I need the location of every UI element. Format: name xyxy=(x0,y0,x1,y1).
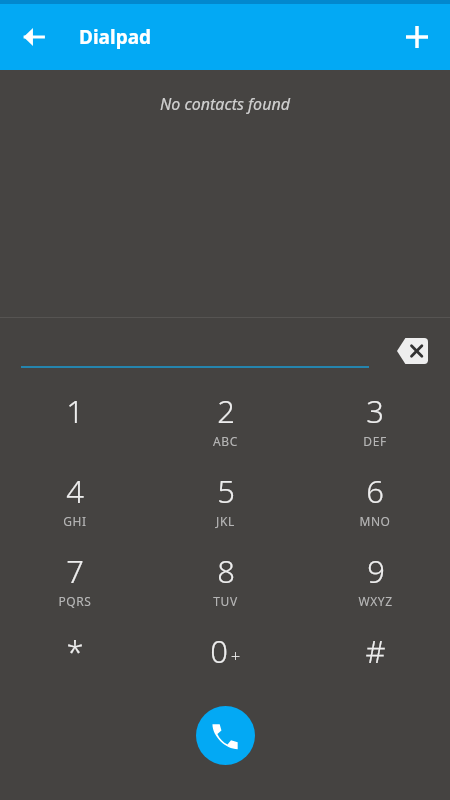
button[interactable]: 4 xyxy=(0,464,150,544)
staticText: GHI xyxy=(63,513,87,529)
staticText: 1 xyxy=(66,390,84,432)
button[interactable]: Backspace xyxy=(390,329,434,373)
staticText: ABC xyxy=(213,433,238,449)
button[interactable]: 8 xyxy=(150,544,300,624)
button[interactable]: Call xyxy=(196,706,255,765)
staticText: 9 xyxy=(367,550,385,592)
staticText: 2 xyxy=(217,390,235,432)
staticText: 0 xyxy=(210,630,228,672)
staticText: # xyxy=(365,630,386,672)
button[interactable]: 9 xyxy=(300,544,450,624)
button[interactable]: * xyxy=(0,624,150,704)
button[interactable]: # xyxy=(300,624,450,704)
button[interactable]: Back xyxy=(10,13,58,61)
staticText: PQRS xyxy=(58,593,92,609)
staticText: * xyxy=(66,630,84,672)
button[interactable]: 7 xyxy=(0,544,150,624)
staticText: MNO xyxy=(359,513,391,529)
staticText: WXYZ xyxy=(358,593,393,609)
staticText: 7 xyxy=(66,550,84,592)
button[interactable]: 0 xyxy=(150,624,300,704)
button[interactable]: 3 xyxy=(300,384,450,464)
staticText: 3 xyxy=(366,390,384,432)
staticText: 8 xyxy=(217,550,235,592)
staticText: TUV xyxy=(213,593,238,609)
button[interactable]: 1 xyxy=(0,384,150,464)
staticText: No contacts found xyxy=(160,93,290,115)
staticText: JKL xyxy=(216,513,235,529)
staticText: 6 xyxy=(366,470,384,512)
staticText: + xyxy=(231,645,241,667)
button[interactable]: 5 xyxy=(150,464,300,544)
button[interactable]: 2 xyxy=(150,384,300,464)
button[interactable]: Add contact xyxy=(393,13,441,61)
staticText: DEF xyxy=(363,433,387,449)
staticText: Dialpad xyxy=(79,24,152,50)
button[interactable]: 6 xyxy=(300,464,450,544)
staticText: 5 xyxy=(217,470,235,512)
staticText: 4 xyxy=(66,470,84,512)
